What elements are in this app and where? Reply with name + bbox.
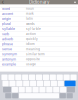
staticText: adverb — [2, 37, 13, 41]
staticText: latin — [26, 17, 33, 21]
staticText: idiom — [26, 42, 35, 46]
staticText: example — [2, 62, 16, 66]
button[interactable]: example — [0, 62, 78, 67]
staticText: syl·la·ble — [26, 27, 41, 31]
staticText: mark — [26, 12, 34, 15]
staticText: sense — [2, 47, 12, 51]
staticText: word — [2, 7, 10, 11]
button[interactable]: plural — [0, 21, 78, 26]
staticText: phrase — [2, 42, 13, 46]
button[interactable]: More — [72, 0, 78, 5]
staticText: origin — [2, 17, 11, 21]
staticText: verb — [2, 32, 9, 36]
staticText: quickly — [26, 37, 38, 41]
button[interactable]: synonym — [0, 52, 78, 57]
button[interactable]: antonym — [0, 57, 78, 62]
staticText: words — [26, 22, 35, 26]
button[interactable]: sense — [0, 47, 78, 52]
button[interactable]: word — [0, 6, 78, 11]
staticText: usage — [26, 62, 36, 66]
staticText: ‹ — [1, 0, 4, 6]
staticText: antonym — [2, 57, 16, 61]
button[interactable]: accent — [0, 11, 78, 16]
staticText: Dictionary — [29, 0, 49, 5]
button[interactable]: phrase — [0, 42, 78, 47]
staticText: accent — [2, 12, 13, 16]
button[interactable]: syllable — [0, 26, 78, 31]
button[interactable]: verb — [0, 32, 78, 37]
staticText: similar term — [26, 52, 45, 56]
staticText: plural — [2, 22, 11, 26]
staticText: noun — [26, 7, 34, 10]
staticText: action — [26, 32, 36, 36]
staticText: syllable — [2, 27, 15, 31]
button[interactable]: adverb — [0, 37, 78, 42]
button[interactable]: origin — [0, 16, 78, 21]
button[interactable]: Back — [0, 0, 6, 5]
staticText: meaning — [26, 47, 40, 51]
staticText: opposite — [26, 57, 40, 61]
staticText: synonym — [2, 52, 17, 56]
